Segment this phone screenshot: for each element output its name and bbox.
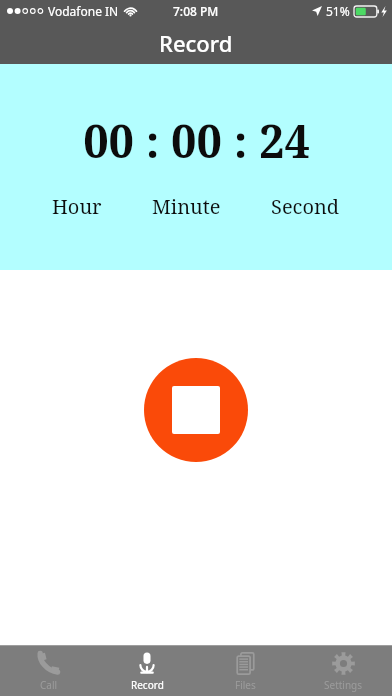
staticText: Second: [271, 193, 340, 220]
staticText: Minute: [152, 193, 221, 220]
staticText: 00 : 00 : 24: [83, 110, 310, 171]
staticText: Files: [235, 678, 256, 692]
staticText: Vodafone IN: [48, 3, 119, 19]
staticText: Call: [40, 678, 58, 692]
button[interactable]: Call: [0, 646, 98, 696]
button[interactable]: Record: [98, 646, 196, 696]
staticText: Record: [159, 28, 233, 58]
button[interactable]: Files: [196, 646, 294, 696]
staticText: 7:08 PM: [173, 3, 219, 19]
staticText: Record: [131, 678, 164, 692]
button[interactable]: Settings: [294, 646, 392, 696]
button[interactable]: Stop recording: [144, 358, 248, 462]
staticText: Settings: [324, 678, 363, 692]
staticText: Hour: [52, 193, 102, 220]
staticText: 51%: [326, 3, 350, 19]
